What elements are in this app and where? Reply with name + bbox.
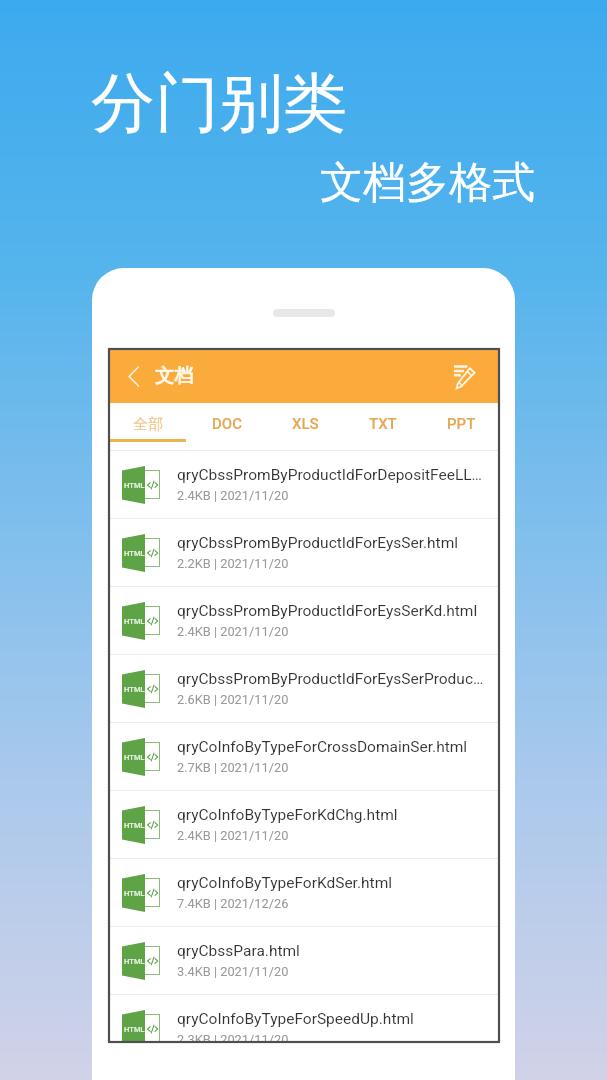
button[interactable]: HTML	[108, 519, 500, 586]
button[interactable]: HTML	[108, 451, 500, 518]
button[interactable]: HTML	[108, 791, 500, 858]
staticText: 3.4KB | 2021/11/20	[177, 964, 289, 979]
staticText: 2.4KB | 2021/11/20	[177, 488, 289, 503]
button[interactable]: HTML	[108, 655, 500, 722]
button[interactable]: HTML	[108, 859, 500, 926]
staticText: qryCoInfoByTypeForSpeedUp.html	[177, 1010, 414, 1028]
staticText: 2.4KB | 2021/11/20	[177, 828, 289, 843]
button[interactable]: Back	[118, 361, 148, 391]
button[interactable]: HTML	[108, 587, 500, 654]
button[interactable]: HTML	[108, 927, 500, 994]
staticText: HTML	[124, 549, 145, 558]
staticText: qryCoInfoByTypeForKdSer.html	[177, 874, 392, 892]
staticText: HTML	[124, 753, 145, 762]
staticText: qryCbssPromByProductIdForDepositFeeLLB…	[177, 466, 487, 484]
button[interactable]: Edit	[447, 358, 483, 394]
staticText: qryCbssPara.html	[177, 942, 300, 960]
staticText: 文档	[155, 364, 193, 388]
staticText: qryCoInfoByTypeForCrossDomainSer.html	[177, 738, 468, 756]
staticText: HTML	[124, 685, 145, 694]
staticText: TXT	[369, 415, 397, 433]
staticText: qryCbssPromByProductIdForEysSer.html	[177, 534, 459, 552]
staticText: 2.3KB | 2021/11/20	[177, 1032, 289, 1042]
staticText: 2.6KB | 2021/11/20	[177, 692, 289, 707]
staticText: HTML	[124, 821, 145, 830]
staticText: HTML	[124, 957, 145, 966]
staticText: 文档多格式	[320, 156, 535, 210]
button[interactable]: TXT	[344, 403, 422, 450]
staticText: qryCoInfoByTypeForKdChg.html	[177, 806, 398, 824]
staticText: XLS	[292, 415, 319, 433]
staticText: 2.4KB | 2021/11/20	[177, 624, 289, 639]
staticText: 7.4KB | 2021/12/26	[177, 896, 289, 911]
staticText: HTML	[124, 617, 145, 626]
staticText: 2.7KB | 2021/11/20	[177, 760, 289, 775]
button[interactable]: XLS	[266, 403, 344, 450]
staticText: 全部	[133, 415, 163, 434]
button[interactable]: HTML	[108, 723, 500, 790]
button[interactable]: 全部	[108, 403, 187, 450]
button[interactable]: PPT	[422, 403, 500, 450]
staticText: qryCbssPromByProductIdForEysSerProduct….	[177, 670, 487, 688]
staticText: DOC	[212, 415, 242, 433]
staticText: qryCbssPromByProductIdForEysSerKd.html	[177, 602, 478, 620]
staticText: HTML	[124, 1025, 145, 1034]
staticText: 2.2KB | 2021/11/20	[177, 556, 289, 571]
staticText: PPT	[447, 415, 476, 433]
staticText: 分门别类	[91, 63, 347, 144]
staticText: HTML	[124, 889, 145, 898]
button[interactable]: DOC	[187, 403, 266, 450]
staticText: HTML	[124, 481, 145, 490]
button[interactable]: HTML	[108, 995, 500, 1042]
